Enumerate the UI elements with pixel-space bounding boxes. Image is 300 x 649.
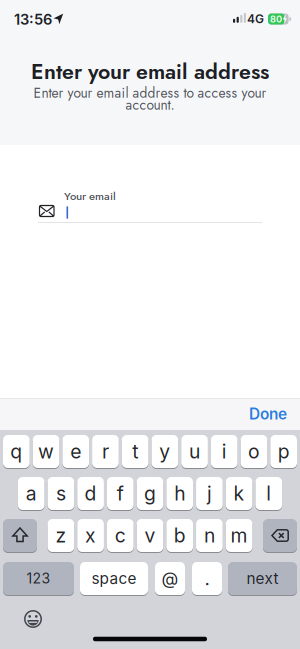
staticText: q bbox=[10, 440, 22, 463]
button[interactable]: h bbox=[166, 477, 193, 510]
button[interactable]: p bbox=[270, 435, 297, 468]
staticText: r bbox=[102, 440, 109, 463]
button[interactable]: n bbox=[196, 519, 223, 552]
staticText: l bbox=[266, 482, 271, 505]
button[interactable]: y bbox=[151, 435, 178, 468]
staticText: u bbox=[189, 440, 200, 463]
button[interactable]: Delete bbox=[263, 519, 297, 552]
button[interactable]: g bbox=[137, 477, 163, 510]
button[interactable]: w bbox=[33, 435, 59, 468]
staticText: w bbox=[38, 440, 54, 463]
button[interactable]: m bbox=[226, 519, 252, 552]
button[interactable]: l bbox=[255, 477, 282, 510]
staticText: i bbox=[222, 440, 227, 463]
staticText: b bbox=[174, 524, 186, 547]
staticText: f bbox=[117, 482, 124, 505]
button[interactable]: q bbox=[3, 435, 30, 468]
button[interactable]: next bbox=[228, 562, 297, 595]
button[interactable]: i bbox=[211, 435, 238, 468]
button[interactable]: k bbox=[226, 477, 252, 510]
staticText: @ bbox=[161, 568, 178, 589]
button[interactable]: v bbox=[137, 519, 163, 552]
staticText: v bbox=[144, 524, 155, 547]
button[interactable]: o bbox=[241, 435, 267, 468]
button[interactable]: Your email bbox=[38, 186, 262, 224]
button[interactable]: space bbox=[80, 562, 148, 595]
staticText: o bbox=[248, 440, 260, 463]
staticText: space bbox=[91, 569, 136, 588]
button[interactable]: . bbox=[192, 562, 222, 595]
button[interactable]: u bbox=[181, 435, 208, 468]
button[interactable]: e bbox=[62, 435, 89, 468]
staticText: n bbox=[204, 524, 215, 547]
button[interactable]: r bbox=[92, 435, 119, 468]
button[interactable]: d bbox=[77, 477, 104, 510]
button[interactable]: Done bbox=[249, 405, 300, 423]
staticText: h bbox=[174, 482, 185, 505]
staticText: 4G bbox=[247, 12, 264, 26]
staticText: k bbox=[234, 482, 245, 505]
button[interactable]: Shift bbox=[3, 519, 37, 552]
staticText: j bbox=[207, 482, 212, 505]
staticText: t bbox=[132, 440, 138, 463]
staticText: c bbox=[115, 524, 126, 547]
button[interactable]: Emoji bbox=[21, 607, 45, 631]
button[interactable]: @ bbox=[155, 562, 185, 595]
staticText: 13:56 bbox=[14, 11, 52, 28]
staticText: 123 bbox=[26, 570, 50, 587]
staticText: e bbox=[70, 440, 81, 463]
staticText: . bbox=[204, 567, 209, 590]
button[interactable]: j bbox=[196, 477, 223, 510]
button[interactable]: 123 bbox=[3, 562, 74, 595]
staticText: s bbox=[56, 482, 66, 505]
staticText: 80 bbox=[270, 13, 282, 25]
staticText: account. bbox=[125, 95, 174, 115]
button[interactable]: z bbox=[47, 519, 74, 552]
staticText: g bbox=[144, 482, 156, 505]
staticText: Enter your email address to access your bbox=[33, 83, 266, 103]
staticText: next bbox=[246, 569, 278, 588]
button[interactable]: t bbox=[122, 435, 148, 468]
button[interactable]: b bbox=[166, 519, 193, 552]
staticText: Done bbox=[249, 405, 287, 423]
staticText: Enter your email address bbox=[31, 56, 269, 87]
staticText: x bbox=[85, 524, 96, 547]
button[interactable]: c bbox=[107, 519, 134, 552]
button[interactable]: s bbox=[48, 477, 74, 510]
staticText: p bbox=[278, 440, 290, 463]
button[interactable]: x bbox=[77, 519, 104, 552]
button[interactable]: f bbox=[107, 477, 134, 510]
staticText: a bbox=[26, 482, 37, 505]
staticText: d bbox=[85, 482, 97, 505]
staticText: Your email bbox=[64, 188, 116, 204]
button[interactable]: a bbox=[18, 477, 45, 510]
staticText: m bbox=[231, 524, 248, 547]
staticText: z bbox=[55, 524, 66, 547]
staticText: y bbox=[159, 440, 170, 463]
